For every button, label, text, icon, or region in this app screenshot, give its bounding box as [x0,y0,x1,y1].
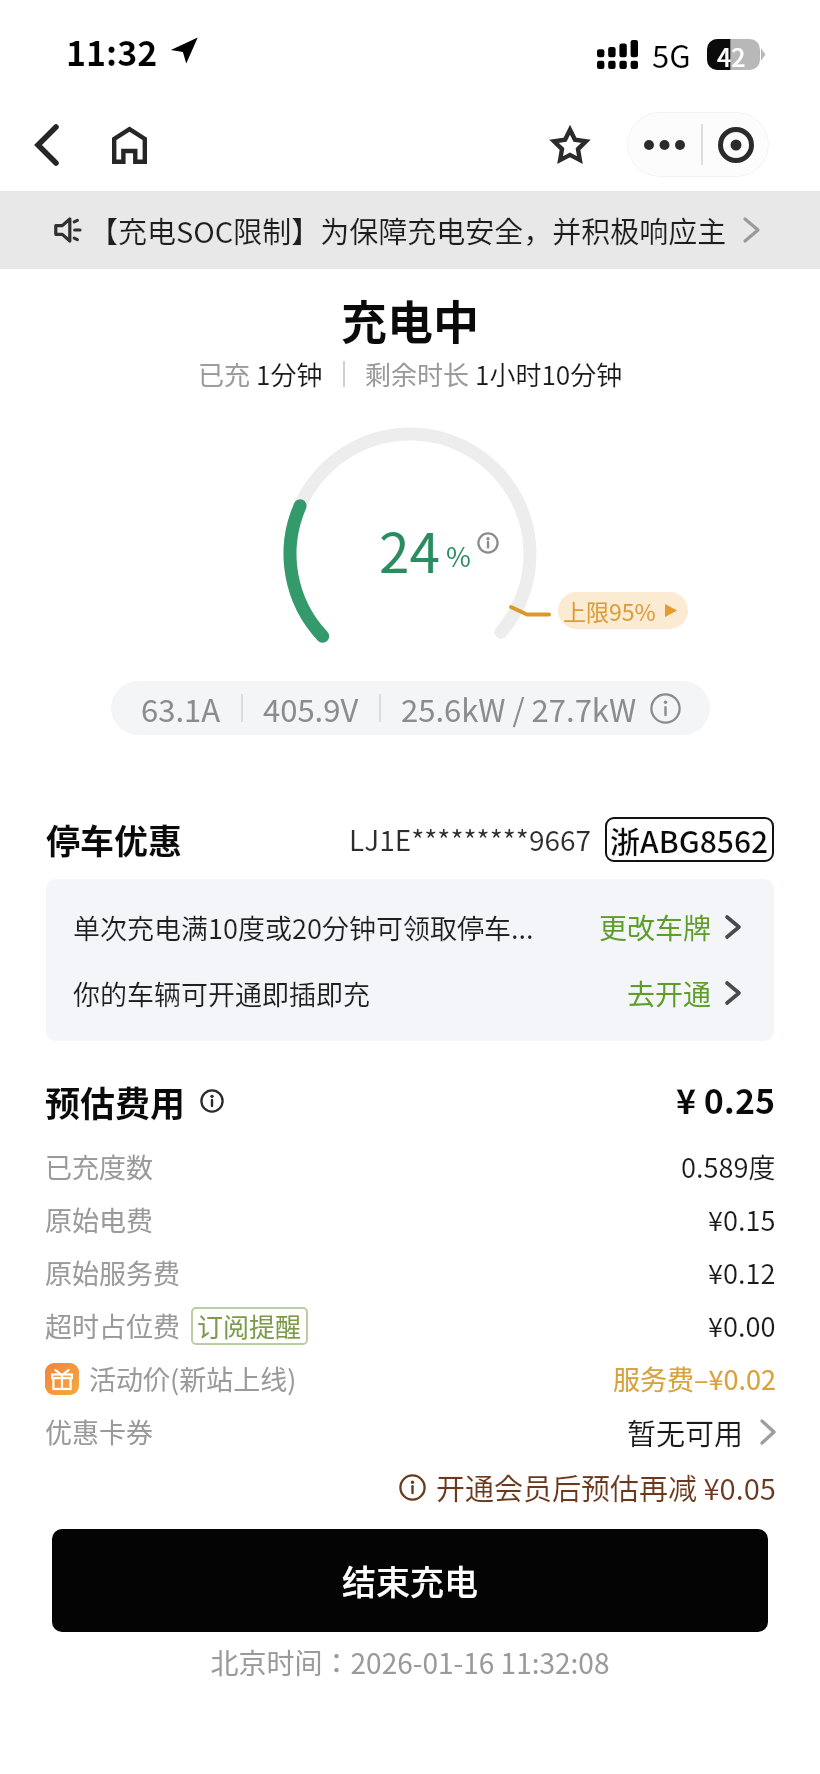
staticText: 原始服务费 [45,1253,180,1292]
button[interactable]: 优惠卡券 [45,1405,776,1458]
button[interactable]: 单次充电满10度或20分钟可领取停车... [46,894,774,960]
staticText: 剩余时长 [365,355,475,393]
button[interactable]: 浙ABG8562 [605,817,774,862]
staticText: 优惠卡券 [45,1412,153,1451]
staticText: 活动价(新站上线) [89,1359,297,1398]
button[interactable]: Fee info [200,1089,224,1113]
staticText: 浙ABG8562 [610,818,769,861]
staticText: 更改车牌 [599,907,712,948]
staticText: ¥0.00 [708,1306,776,1345]
staticText: 停车优惠 [46,815,182,863]
staticText: 预估费用 [45,1076,186,1126]
button[interactable]: Back [13,111,81,179]
staticText: 1分钟 [256,355,323,393]
staticText: 订阅提醒 [197,1307,302,1345]
button[interactable]: 上限95% [558,592,688,629]
staticText: 上限95% [563,594,656,627]
staticText: 服务费–¥0.02 [613,1359,776,1398]
staticText: 结束充电 [342,1556,478,1605]
button[interactable]: 开通会员后预估再减 ¥0.05 [45,1466,776,1508]
staticText: LJ1E*********9667 [349,819,592,860]
staticText: 你的车辆可开通即插即充 [73,974,370,1013]
staticText: 11:32 [66,27,158,76]
staticText: ¥ 0.25 [676,1075,776,1124]
staticText: 原始电费 [45,1200,153,1239]
staticText: 42 [717,38,746,69]
staticText: 暂无可用 [627,1411,744,1453]
staticText: 24 [379,509,441,589]
staticText: 63.1A [141,686,221,731]
staticText: 单次充电满10度或20分钟可领取停车... [73,908,534,947]
staticText: 去开通 [627,973,712,1014]
button[interactable]: SOC info [477,532,499,554]
staticText: 超时占位费 [45,1306,180,1345]
staticText: % [446,536,471,575]
staticText: ¥0.12 [708,1253,776,1292]
staticText: 已充度数 [45,1147,153,1186]
button[interactable]: 63.1A [111,681,710,735]
button[interactable]: Favorite [536,111,604,179]
staticText: ¥0.15 [708,1200,776,1239]
button[interactable]: More [627,112,701,177]
staticText: 开通会员后预估再减 ¥0.05 [436,1466,776,1508]
staticText: 25.6kW / 27.7kW [401,686,637,731]
button[interactable]: 结束充电 [52,1529,768,1632]
button[interactable]: Home [95,111,163,179]
staticText: 北京时间：2026-01-16 11:32:08 [0,1642,820,1683]
button[interactable]: Close [703,112,769,177]
staticText: 【充电SOC限制】为保障充电安全，并积极响应主管... [89,209,729,251]
staticText: 充电中 [341,286,479,353]
staticText: 1小时10分钟 [475,355,623,393]
staticText: 0.589度 [681,1147,776,1186]
staticText: 5G [652,32,691,77]
staticText: 已充 [198,355,256,393]
staticText: 405.9V [263,686,359,731]
button[interactable]: 【充电SOC限制】为保障充电安全，并积极响应主管... [0,191,820,269]
button[interactable]: 你的车辆可开通即插即充 [46,960,774,1026]
button[interactable]: 订阅提醒 [191,1307,308,1345]
